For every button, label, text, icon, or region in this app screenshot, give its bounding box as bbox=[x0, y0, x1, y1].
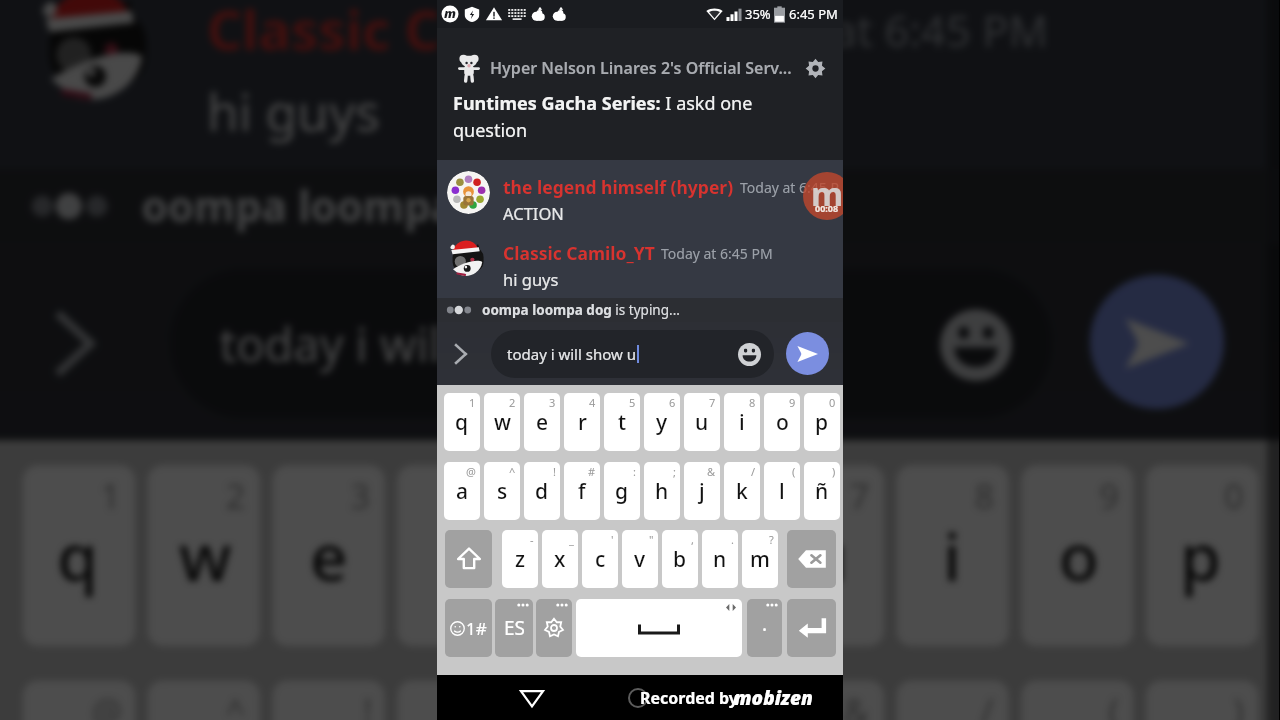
button[interactable]: the legend himself (hyper) bbox=[437, 171, 843, 224]
staticText: # bbox=[588, 464, 596, 479]
button[interactable]: c bbox=[582, 530, 618, 588]
button[interactable]: Space bbox=[576, 599, 742, 657]
button[interactable]: q bbox=[23, 465, 135, 646]
button[interactable]: Emoji bbox=[934, 303, 1015, 384]
button[interactable]: ñ bbox=[1146, 680, 1258, 720]
staticText: 0 bbox=[829, 395, 836, 410]
button[interactable]: m bbox=[742, 530, 778, 588]
button[interactable]: Classic Camilo_YT bbox=[437, 237, 843, 290]
button[interactable]: h bbox=[644, 462, 680, 520]
staticText: 4 bbox=[475, 471, 497, 518]
button[interactable]: today i will show u bbox=[491, 330, 774, 378]
button[interactable]: s bbox=[484, 462, 520, 520]
button[interactable]: i bbox=[896, 465, 1009, 646]
staticText: ! bbox=[553, 464, 556, 479]
staticText: i bbox=[739, 408, 745, 437]
button[interactable]: e bbox=[524, 393, 560, 451]
staticText: @ bbox=[91, 687, 123, 720]
staticText: & bbox=[707, 464, 716, 479]
button[interactable]: a bbox=[23, 680, 135, 720]
button[interactable]: p bbox=[804, 393, 840, 451]
staticText: n bbox=[713, 545, 727, 574]
staticText: x bbox=[554, 545, 566, 574]
button[interactable]: u bbox=[684, 393, 720, 451]
button[interactable]: i bbox=[724, 393, 760, 451]
button[interactable]: Language bbox=[495, 599, 533, 657]
staticText: r bbox=[441, 512, 469, 602]
button[interactable]: l bbox=[1021, 680, 1133, 720]
button[interactable]: Send bbox=[786, 332, 829, 375]
button[interactable]: Symbols bbox=[445, 599, 492, 657]
staticText: ñ bbox=[815, 477, 829, 506]
button[interactable]: r bbox=[397, 465, 509, 646]
staticText: ES bbox=[504, 615, 525, 641]
button[interactable]: q bbox=[444, 393, 480, 451]
button[interactable]: Back bbox=[517, 683, 547, 713]
button[interactable]: t bbox=[522, 465, 634, 646]
button[interactable]: n bbox=[702, 530, 738, 588]
button[interactable]: Emoji bbox=[736, 341, 762, 367]
button[interactable]: p bbox=[1146, 465, 1258, 646]
staticText: l bbox=[779, 477, 785, 506]
button[interactable]: f bbox=[397, 680, 509, 720]
button[interactable]: k bbox=[724, 462, 760, 520]
button[interactable]: e bbox=[272, 465, 385, 646]
button[interactable]: o bbox=[1021, 465, 1133, 646]
button[interactable]: Recording bbox=[803, 172, 843, 220]
staticText: 3 bbox=[549, 395, 556, 410]
button[interactable]: x bbox=[542, 530, 578, 588]
button[interactable]: g bbox=[522, 680, 634, 720]
button[interactable]: Settings bbox=[802, 55, 828, 81]
button[interactable]: Period bbox=[747, 599, 782, 657]
button[interactable]: j bbox=[772, 680, 884, 720]
button[interactable]: Show actions bbox=[437, 332, 483, 376]
button[interactable]: r bbox=[564, 393, 600, 451]
button[interactable]: Backspace bbox=[787, 530, 836, 588]
button[interactable]: u bbox=[772, 465, 884, 646]
staticText: 1 bbox=[101, 471, 123, 518]
button[interactable]: t bbox=[604, 393, 640, 451]
button[interactable]: d bbox=[524, 462, 560, 520]
button[interactable]: today i will show u bbox=[169, 269, 1052, 418]
staticText: ^ bbox=[509, 464, 516, 479]
button[interactable]: z bbox=[502, 530, 538, 588]
staticText: ACTION bbox=[503, 202, 564, 224]
staticText: y bbox=[684, 512, 722, 602]
staticText: w bbox=[494, 408, 511, 437]
button[interactable]: g bbox=[604, 462, 640, 520]
staticText: 2 bbox=[226, 471, 247, 518]
staticText: the legend himself (hyper) bbox=[503, 175, 734, 199]
staticText: ) bbox=[1233, 687, 1246, 720]
button[interactable]: Shift bbox=[445, 530, 492, 588]
button[interactable]: Classic Camilo_YT bbox=[1, 0, 1268, 144]
staticText: b bbox=[673, 545, 687, 574]
button[interactable]: k bbox=[896, 680, 1009, 720]
button[interactable]: j bbox=[684, 462, 720, 520]
button[interactable]: y bbox=[647, 465, 759, 646]
button[interactable]: b bbox=[662, 530, 698, 588]
staticText: k bbox=[736, 477, 748, 506]
staticText: m bbox=[444, 4, 457, 22]
button[interactable]: w bbox=[484, 393, 520, 451]
staticText: y bbox=[656, 408, 668, 437]
button[interactable]: Show actions bbox=[1, 275, 144, 412]
button[interactable]: w bbox=[148, 465, 260, 646]
button[interactable]: s bbox=[148, 680, 260, 720]
button[interactable]: y bbox=[644, 393, 680, 451]
button[interactable]: v bbox=[622, 530, 658, 588]
staticText: a bbox=[456, 477, 469, 506]
button[interactable]: f bbox=[564, 462, 600, 520]
button[interactable]: l bbox=[764, 462, 800, 520]
staticText: q bbox=[455, 408, 469, 437]
button[interactable]: a bbox=[444, 462, 480, 520]
button[interactable]: d bbox=[272, 680, 385, 720]
staticText: s bbox=[497, 477, 508, 506]
button[interactable]: Keyboard settings bbox=[536, 599, 572, 657]
button[interactable]: Enter bbox=[787, 599, 836, 657]
button[interactable]: o bbox=[764, 393, 800, 451]
button[interactable]: ñ bbox=[804, 462, 840, 520]
button[interactable]: Send bbox=[1090, 275, 1224, 409]
button[interactable]: Hyper Nelson Linares 2's Official Serv..… bbox=[457, 54, 828, 82]
button[interactable]: h bbox=[647, 680, 759, 720]
